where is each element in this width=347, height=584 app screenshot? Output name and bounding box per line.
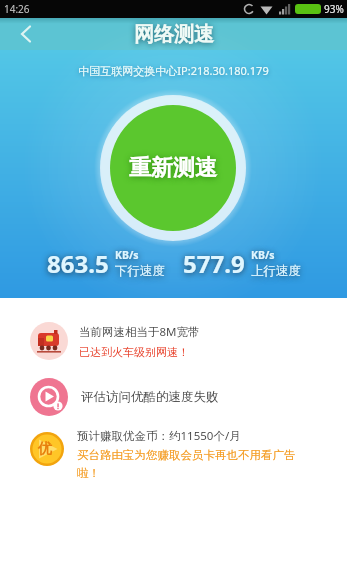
button[interactable]: 优 <box>30 428 319 481</box>
button[interactable]: 重新测速 <box>110 105 236 231</box>
staticText: KB/s <box>115 248 139 262</box>
button[interactable]: 当前网速相当于8M宽带 <box>30 322 347 360</box>
staticText: 买台路由宝为您赚取会员卡再也不用看广告啦！ <box>77 448 301 481</box>
staticText: 下行速度 <box>115 263 165 279</box>
staticText: 577.9 <box>183 247 245 280</box>
staticText: 93% <box>324 2 344 16</box>
staticText: 评估访问优酷的速度失败 <box>81 389 219 405</box>
staticText: 863.5 <box>47 247 109 280</box>
staticText: 优 <box>38 440 52 458</box>
staticText: 网络测速 <box>134 22 214 47</box>
staticText: 上行速度 <box>251 263 301 279</box>
staticText: 预计赚取优金币：约11550个/月 <box>77 428 241 444</box>
button[interactable] <box>0 18 52 50</box>
staticText: 中国互联网交换中心IP:218.30.180.179 <box>0 63 347 78</box>
staticText: 已达到火车级别网速！ <box>79 345 189 359</box>
button[interactable]: 评估访问优酷的速度失败 <box>30 378 347 416</box>
staticText: 14:26 <box>4 2 30 16</box>
staticText: 重新测速 <box>129 154 217 182</box>
staticText: 当前网速相当于8M宽带 <box>79 324 200 340</box>
staticText: KB/s <box>251 248 275 262</box>
